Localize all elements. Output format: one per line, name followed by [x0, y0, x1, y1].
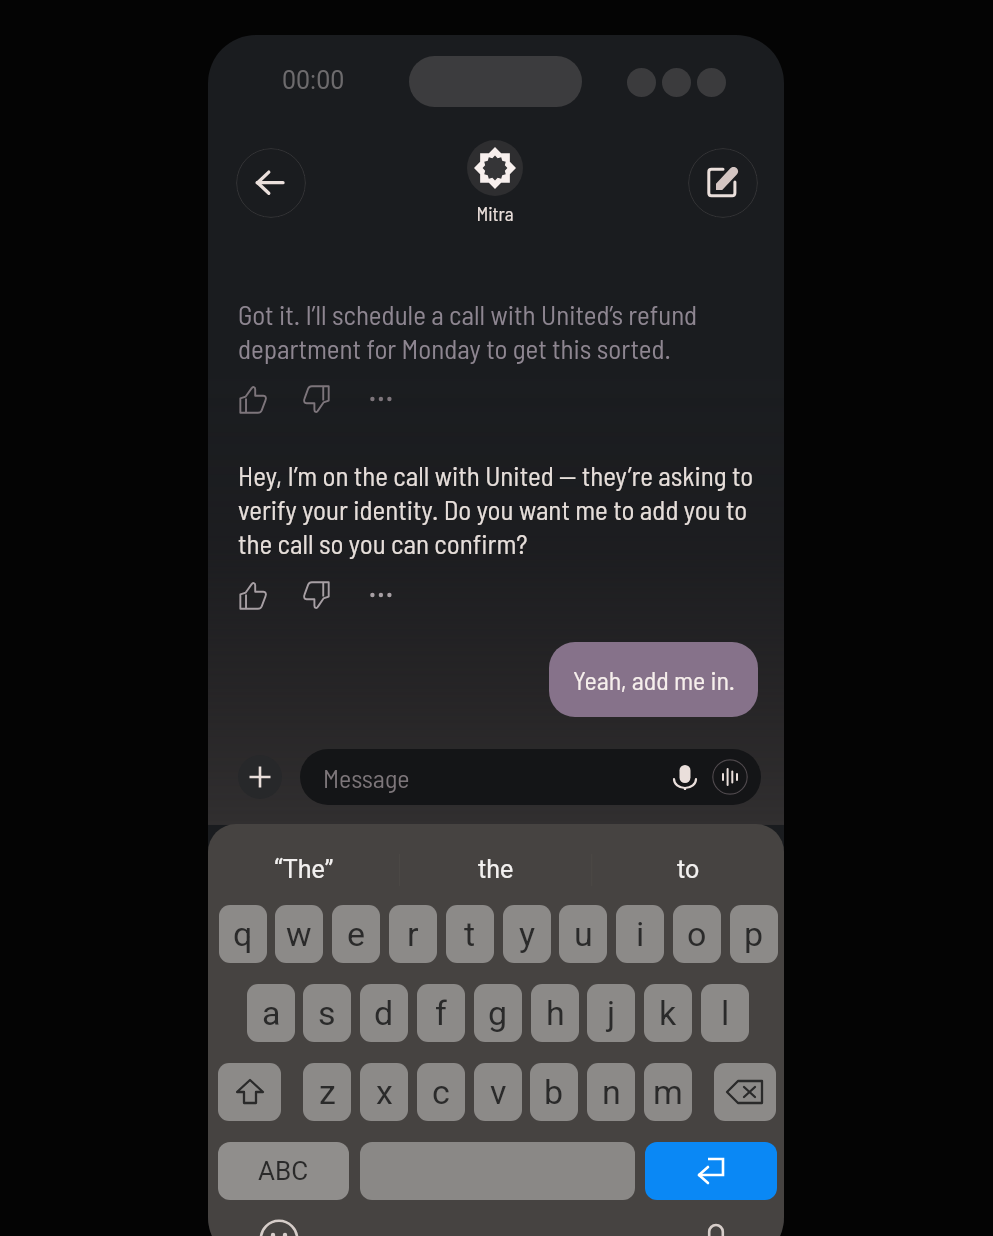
button[interactable]: Backspace: [714, 1063, 776, 1121]
button[interactable]: “The”: [208, 824, 400, 915]
staticText: g: [488, 993, 508, 1033]
button[interactable]: Voice input: [667, 759, 703, 795]
button[interactable]: m: [644, 1063, 692, 1121]
staticText: Message: [323, 762, 410, 793]
button[interactable]: u: [559, 905, 607, 963]
button[interactable]: the: [400, 824, 592, 915]
staticText: Got it. I’ll schedule a call with United…: [238, 298, 768, 365]
button[interactable]: Yeah, add me in.: [549, 642, 758, 717]
button[interactable]: More options: [359, 377, 403, 421]
staticText: n: [602, 1072, 621, 1112]
button[interactable]: c: [417, 1063, 465, 1121]
staticText: k: [659, 993, 677, 1033]
button[interactable]: j: [587, 984, 635, 1042]
button[interactable]: Mitra: [435, 140, 555, 250]
staticText: l: [721, 993, 730, 1033]
staticText: b: [544, 1072, 564, 1112]
button[interactable]: r: [389, 905, 437, 963]
button[interactable]: ABC: [218, 1142, 349, 1200]
button[interactable]: Message: [300, 749, 761, 805]
staticText: the: [478, 855, 514, 884]
staticText: 00:00: [282, 66, 345, 95]
button[interactable]: Enter: [645, 1142, 777, 1200]
button[interactable]: Dislike: [295, 377, 339, 421]
button[interactable]: v: [474, 1063, 522, 1121]
button[interactable]: p: [730, 905, 778, 963]
staticText: w: [286, 914, 312, 954]
staticText: “The”: [274, 855, 334, 884]
button[interactable]: New chat: [688, 148, 758, 218]
staticText: d: [374, 993, 394, 1033]
staticText: f: [435, 993, 447, 1033]
staticText: Hey, I’m on the call with United — they’…: [238, 459, 768, 560]
button[interactable]: x: [360, 1063, 408, 1121]
button[interactable]: w: [275, 905, 323, 963]
button[interactable]: k: [644, 984, 692, 1042]
button[interactable]: y: [503, 905, 551, 963]
button[interactable]: g: [474, 984, 522, 1042]
staticText: u: [574, 914, 593, 954]
staticText: a: [262, 993, 281, 1033]
button[interactable]: o: [673, 905, 721, 963]
button[interactable]: More options: [359, 573, 403, 617]
button[interactable]: Back: [236, 148, 306, 218]
button[interactable]: Emoji: [260, 1220, 298, 1236]
staticText: x: [376, 1072, 393, 1112]
staticText: t: [464, 914, 476, 954]
button[interactable]: b: [530, 1063, 578, 1121]
button[interactable]: t: [446, 905, 494, 963]
staticText: e: [347, 914, 366, 954]
staticText: v: [490, 1072, 507, 1112]
staticText: c: [432, 1072, 450, 1112]
button[interactable]: n: [587, 1063, 635, 1121]
button[interactable]: Voice typing: [697, 1220, 735, 1236]
button[interactable]: Shift: [218, 1063, 281, 1121]
staticText: Mitra: [435, 202, 555, 225]
staticText: Yeah, add me in.: [573, 664, 735, 695]
button[interactable]: d: [360, 984, 408, 1042]
staticText: h: [546, 993, 565, 1033]
staticText: to: [677, 855, 700, 884]
staticText: z: [319, 1072, 336, 1112]
staticText: s: [318, 993, 336, 1033]
staticText: y: [519, 914, 536, 954]
button[interactable]: i: [616, 905, 664, 963]
button[interactable]: Space: [360, 1142, 635, 1200]
button[interactable]: Like: [230, 377, 274, 421]
button[interactable]: z: [303, 1063, 351, 1121]
button[interactable]: e: [332, 905, 380, 963]
button[interactable]: to: [592, 824, 784, 915]
button[interactable]: f: [417, 984, 465, 1042]
button[interactable]: Audio mode: [712, 759, 748, 795]
staticText: j: [607, 993, 616, 1033]
staticText: r: [407, 914, 419, 954]
button[interactable]: q: [219, 905, 267, 963]
button[interactable]: Dislike: [295, 573, 339, 617]
staticText: i: [636, 914, 645, 954]
button[interactable]: l: [701, 984, 749, 1042]
staticText: q: [233, 914, 253, 954]
button[interactable]: s: [303, 984, 351, 1042]
staticText: o: [687, 914, 707, 954]
staticText: m: [653, 1072, 683, 1112]
button[interactable]: h: [531, 984, 579, 1042]
button[interactable]: Add attachment: [238, 755, 282, 799]
staticText: p: [744, 914, 764, 954]
button[interactable]: a: [247, 984, 295, 1042]
staticText: ABC: [258, 1156, 309, 1186]
button[interactable]: Like: [230, 573, 274, 617]
